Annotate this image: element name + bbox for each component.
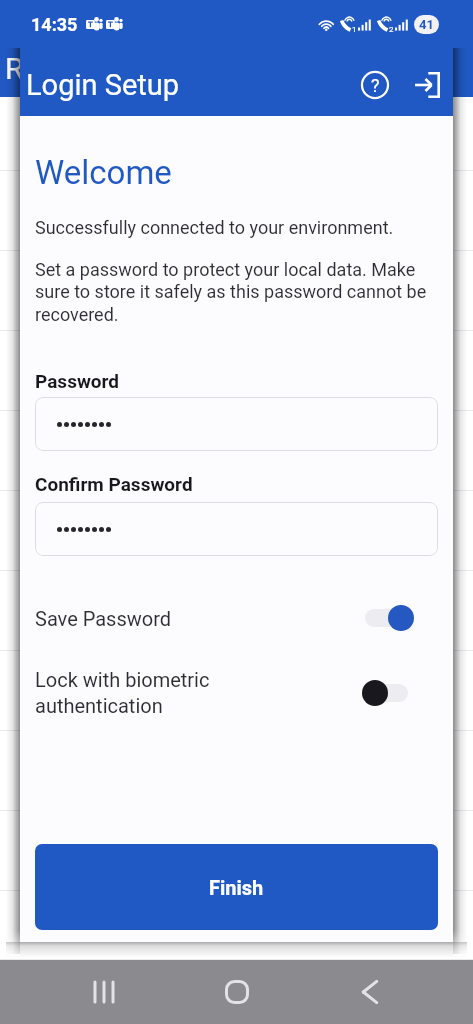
staticText: Set a password to protect your local dat… [35,259,438,326]
staticText: 1 [352,25,357,34]
staticText: ? [371,75,380,96]
button[interactable] [35,502,438,556]
button[interactable] [0,171,473,251]
staticText: 41 [419,17,434,32]
staticText: R [5,51,24,86]
staticText: Lock with biometric authentication [35,668,359,717]
button[interactable] [0,731,473,811]
button[interactable]: Sign in [401,59,453,111]
staticText: Confirm Password [35,473,193,495]
staticText: Password [35,370,120,392]
button[interactable] [0,491,473,571]
button[interactable]: Lock with biometric authentication [35,668,438,717]
staticText: Finish [209,876,264,899]
button[interactable] [0,251,473,331]
staticText: 14:35 [31,14,78,35]
button[interactable] [0,571,473,651]
button[interactable] [35,397,438,451]
staticText: Login Setup [26,68,180,102]
staticText: Welcome [35,153,172,192]
button[interactable]: Save Password [35,603,438,633]
staticText: Save Password [35,607,359,630]
button[interactable]: Finish [35,844,438,930]
button[interactable] [0,97,473,171]
button[interactable] [0,811,473,891]
staticText: 2 [389,25,394,34]
button[interactable]: Help [349,59,401,111]
button[interactable] [0,331,473,411]
button[interactable]: Home [213,968,261,1016]
button[interactable] [0,411,473,491]
button[interactable] [0,651,473,731]
button[interactable]: Recent apps [80,968,128,1016]
button[interactable] [0,891,473,960]
staticText: Successfully connected to your environme… [35,217,394,238]
button[interactable]: Back [346,968,394,1016]
